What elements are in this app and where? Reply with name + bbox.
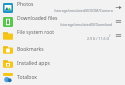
staticText: Installed apps <box>17 60 50 67</box>
staticText: Totalbox <box>17 74 38 81</box>
button[interactable]: Bookmarks <box>0 42 125 56</box>
button[interactable]: Open <box>113 2 123 12</box>
button[interactable]: Downloaded files <box>0 14 125 28</box>
staticText: Bookmarks <box>17 46 44 53</box>
button[interactable]: File system root <box>0 28 125 42</box>
staticText: Photos <box>17 1 34 8</box>
staticText: 2.9 G / 11.6 G <box>87 36 109 41</box>
button[interactable]: Reorder <box>113 30 123 40</box>
button[interactable]: Photos <box>0 0 125 14</box>
staticText: / <box>109 33 111 38</box>
button[interactable]: Totalbox <box>0 70 125 84</box>
button[interactable]: Installed apps <box>0 56 125 70</box>
button[interactable]: Reorder <box>113 16 123 26</box>
staticText: /storage/emulated/0/DCIM/Camera <box>54 8 113 13</box>
staticText: /storage/emulated/0/Download <box>60 22 113 27</box>
staticText: Downloaded files <box>17 15 58 22</box>
staticText: File system root <box>17 29 55 36</box>
